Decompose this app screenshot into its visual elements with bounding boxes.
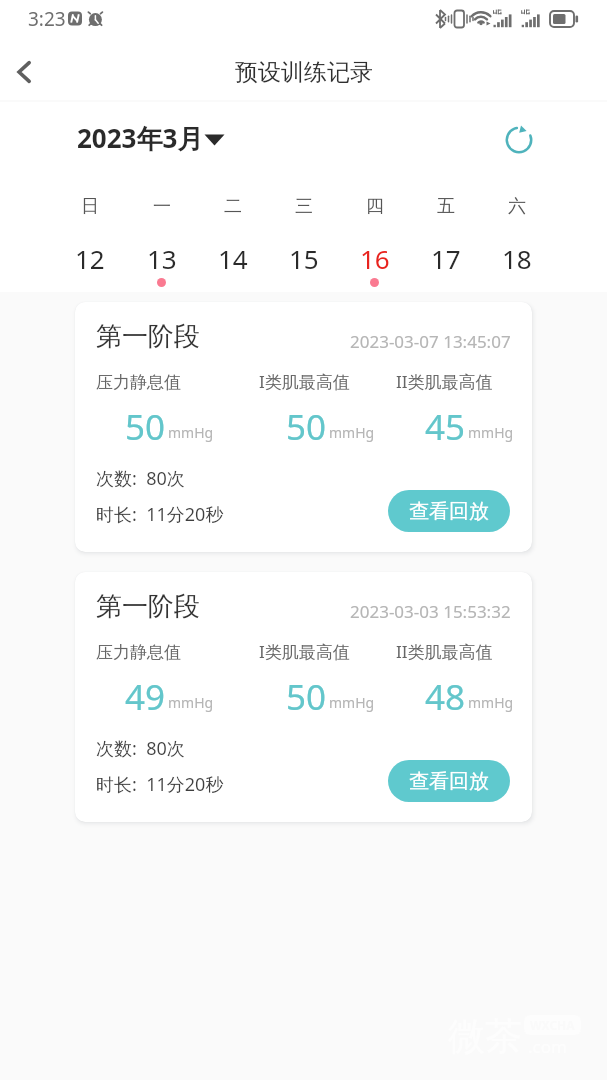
staticText: 第一阶段 (96, 320, 200, 353)
staticText: mmHg (329, 423, 375, 442)
staticText: mmHg (168, 693, 214, 712)
button[interactable]: 18 (481, 235, 552, 292)
staticText: 次数: 80次 (96, 736, 185, 761)
button[interactable]: 16 (339, 235, 410, 292)
staticText: 45 (425, 403, 466, 451)
button[interactable]: Refresh (497, 118, 541, 162)
staticText: 2023-03-03 15:53:32 (350, 600, 511, 623)
staticText: II类肌最高值 (396, 640, 493, 663)
button[interactable]: 查看回放 (388, 760, 510, 802)
staticText: 2023-03-07 13:45:07 (350, 330, 511, 353)
staticText: 四 (366, 195, 384, 218)
staticText: mmHg (168, 423, 214, 442)
staticText: 50 (286, 673, 327, 721)
staticText: mmHg (329, 693, 375, 712)
staticText: 预设训练记录 (235, 58, 373, 87)
button[interactable]: 13 (126, 235, 197, 292)
staticText: 13 (147, 241, 177, 276)
staticText: 2023年3月 (77, 120, 204, 156)
staticText: 查看回放 (409, 499, 489, 524)
staticText: 压力静息值 (96, 372, 181, 393)
button[interactable]: 17 (410, 235, 481, 292)
button[interactable]: 2023年3月 (77, 122, 233, 158)
staticText: 压力静息值 (96, 642, 181, 663)
button[interactable]: Back (0, 48, 48, 96)
staticText: I类肌最高值 (259, 370, 350, 393)
staticText: mmHg (468, 423, 514, 442)
staticText: 18 (502, 241, 532, 276)
staticText: 查看回放 (409, 769, 489, 794)
staticText: 50 (125, 403, 166, 451)
staticText: 时长: 11分20秒 (96, 772, 224, 797)
staticText: 14 (218, 241, 248, 276)
staticText: 17 (431, 241, 461, 276)
button[interactable]: 14 (197, 235, 268, 292)
staticText: 3:23 (28, 6, 66, 32)
staticText: 15 (289, 241, 319, 276)
button[interactable]: 12 (54, 235, 126, 292)
staticText: 16 (360, 241, 390, 276)
staticText: 时长: 11分20秒 (96, 502, 224, 527)
staticText: 一 (153, 195, 171, 218)
staticText: 48 (425, 673, 466, 721)
button[interactable]: 15 (268, 235, 339, 292)
staticText: 第一阶段 (96, 590, 200, 623)
staticText: 三 (295, 195, 313, 218)
staticText: II类肌最高值 (396, 370, 493, 393)
staticText: I类肌最高值 (259, 640, 350, 663)
staticText: mmHg (468, 693, 514, 712)
button[interactable]: 查看回放 (388, 490, 510, 532)
button[interactable]: 第一阶段 (75, 302, 532, 552)
staticText: 50 (286, 403, 327, 451)
staticText: 五 (437, 195, 455, 218)
staticText: 次数: 80次 (96, 466, 185, 491)
staticText: 二 (224, 195, 242, 218)
staticText: 日 (81, 195, 99, 218)
staticText: 12 (75, 241, 105, 276)
staticText: 六 (508, 195, 526, 218)
button[interactable]: 第一阶段 (75, 572, 532, 822)
staticText: 49 (125, 673, 166, 721)
